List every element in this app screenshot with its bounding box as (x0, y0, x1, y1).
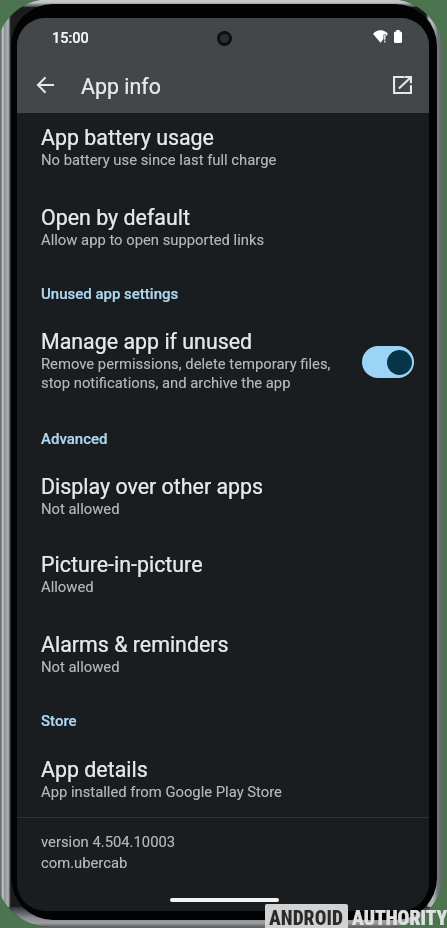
button[interactable]: Manage app if unused (362, 346, 414, 378)
button[interactable]: Manage app if unused (17, 329, 429, 403)
staticText: Not allowed (41, 658, 120, 675)
button[interactable]: Navigate up (23, 63, 67, 107)
button[interactable]: Display over other apps (17, 474, 429, 526)
staticText: Store (41, 712, 77, 730)
staticText: Picture-in-picture (41, 552, 203, 577)
staticText: Manage app if unused (41, 329, 253, 354)
staticText: App battery usage (41, 125, 214, 150)
staticText: No battery use since last full charge (41, 151, 277, 168)
staticText: com.ubercab (41, 854, 128, 871)
staticText: Allowed (41, 578, 94, 595)
button[interactable]: App details (17, 757, 429, 809)
button[interactable]: Picture-in-picture (17, 552, 429, 604)
button[interactable]: App battery usage (17, 125, 429, 177)
staticText: Display over other apps (41, 474, 264, 499)
staticText: Unused app settings (41, 285, 179, 303)
staticText: ANDROID (269, 907, 343, 928)
staticText: Alarms & reminders (41, 632, 229, 657)
staticText: Open by default (41, 205, 190, 230)
staticText: App info (81, 74, 161, 99)
button[interactable]: App info (81, 64, 211, 108)
staticText: 15:00 (52, 30, 89, 47)
button[interactable]: Open by default (17, 205, 429, 257)
staticText: Allow app to open supported links (41, 231, 265, 248)
staticText: Not allowed (41, 500, 120, 517)
staticText: App installed from Google Play Store (41, 783, 282, 800)
staticText: Advanced (41, 430, 108, 448)
staticText: AUTHORITY (352, 907, 447, 928)
staticText: version 4.504.10003 (41, 833, 176, 850)
button[interactable]: Alarms & reminders (17, 632, 429, 684)
button[interactable]: Open app in store (380, 63, 424, 107)
staticText: Remove permissions, delete temporary fil… (41, 355, 343, 392)
staticText: App details (41, 757, 148, 782)
